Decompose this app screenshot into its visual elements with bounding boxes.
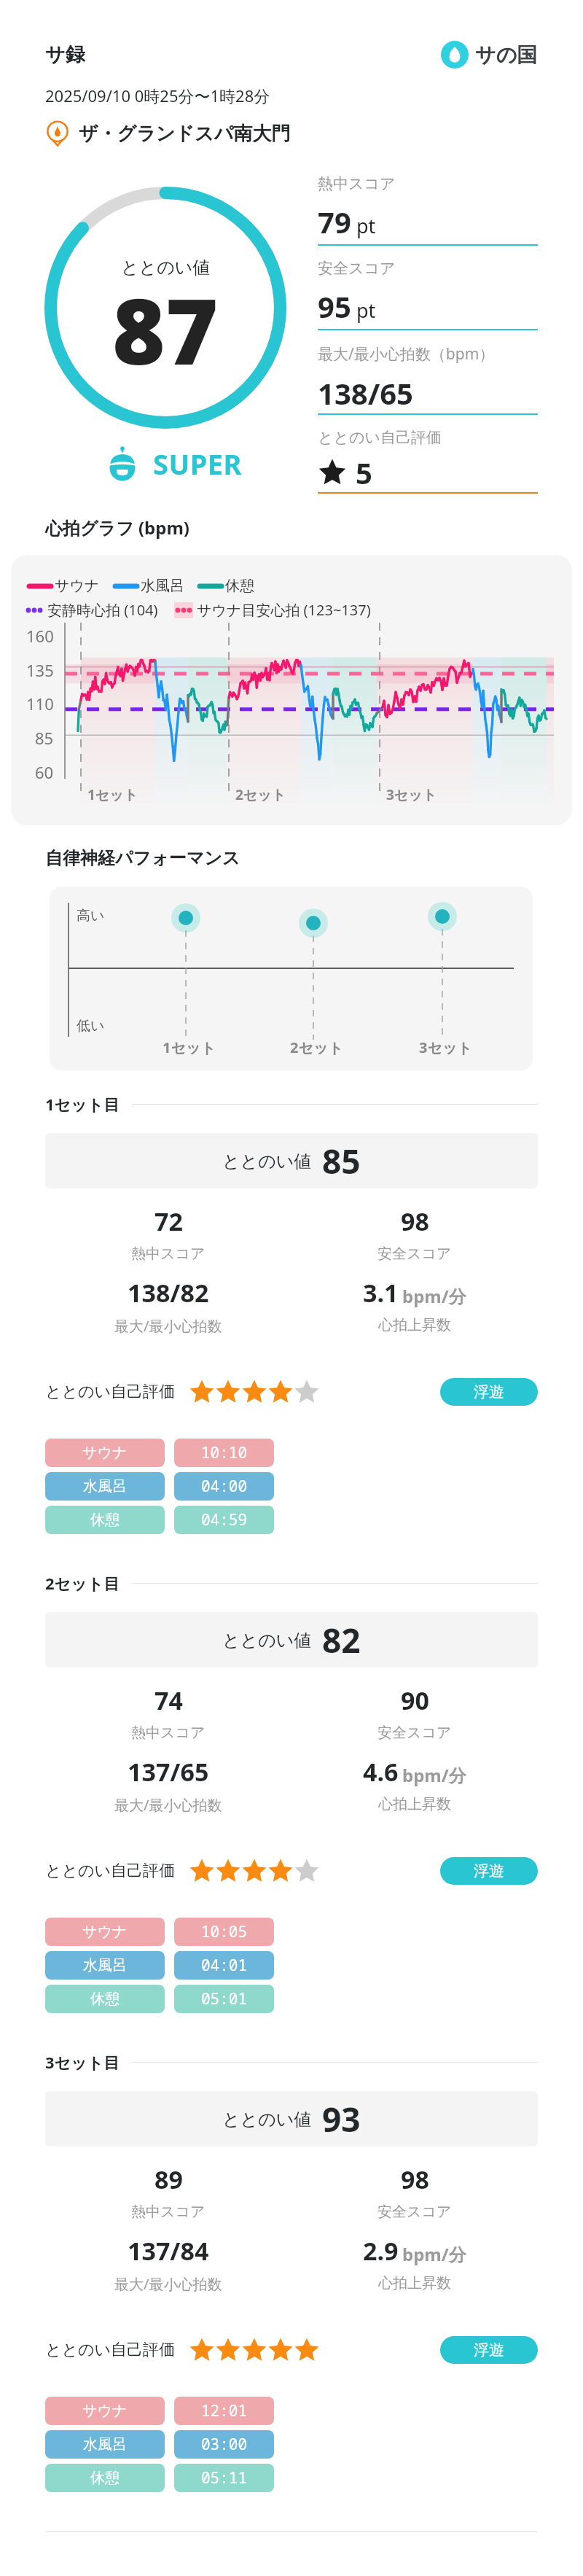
staticText: 90 — [401, 1684, 429, 1717]
staticText: 休憩 — [90, 2469, 120, 2487]
staticText: 79 — [318, 202, 351, 241]
staticText: サウナ — [82, 1923, 128, 1941]
staticText: ととのい自己評価 — [45, 1861, 176, 1881]
staticText: 心拍上昇数 — [378, 1795, 451, 1813]
staticText: サウナ — [55, 577, 100, 595]
staticText: サウナ目安心拍 (123~137) — [197, 600, 371, 620]
staticText: 110 — [26, 693, 54, 715]
staticText: 2セット — [235, 785, 286, 804]
staticText: 82 — [322, 1617, 361, 1663]
staticText: ととのい値 — [222, 2109, 312, 2131]
staticText: 安全スコア — [377, 1724, 452, 1742]
staticText: 12:01 — [201, 2400, 247, 2421]
staticText: 自律神経パフォーマンス — [45, 847, 240, 869]
staticText: 74 — [154, 1684, 183, 1717]
staticText: bpm/分 — [402, 1763, 466, 1787]
staticText: 138/65 — [318, 373, 413, 413]
staticText: 10:10 — [201, 1442, 247, 1463]
staticText: 安全スコア — [318, 259, 396, 278]
staticText: 安静時心拍 (104) — [47, 600, 158, 620]
staticText: 160 — [26, 625, 54, 647]
staticText: 03:00 — [201, 2434, 247, 2455]
staticText: 93 — [322, 2096, 361, 2142]
staticText: 3セット — [386, 785, 437, 804]
staticText: 水風呂 — [83, 1956, 127, 1974]
staticText: ザ・グランドスパ南大門 — [79, 122, 291, 146]
staticText: サウナ — [82, 2402, 128, 2420]
button[interactable]: 浮遊 — [440, 1378, 538, 1406]
staticText: 休憩 — [225, 577, 254, 595]
staticText: 最大/最小心拍数 — [114, 1316, 222, 1336]
staticText: ととのい値 — [222, 1630, 312, 1651]
staticText: bpm/分 — [402, 2242, 466, 2266]
staticText: 安全スコア — [377, 1245, 452, 1263]
button[interactable]: 評価 5 / 5 — [189, 2337, 320, 2363]
staticText: 熱中スコア — [131, 1245, 206, 1263]
staticText: ととのい自己評価 — [318, 428, 442, 447]
staticText: 水風呂 — [83, 2435, 127, 2454]
staticText: 98 — [401, 2163, 429, 2196]
staticText: pt — [356, 212, 376, 239]
staticText: 2セット目 — [45, 1572, 120, 1594]
button[interactable]: 浮遊 — [440, 2336, 538, 2364]
staticText: ととのい自己評価 — [45, 1382, 176, 1402]
staticText: 138/82 — [128, 1276, 209, 1310]
staticText: 04:01 — [201, 1955, 247, 1976]
staticText: ととのい値 — [222, 1151, 312, 1172]
staticText: 98 — [401, 1205, 429, 1238]
staticText: 60 — [35, 761, 54, 783]
staticText: 安全スコア — [377, 2203, 452, 2221]
staticText: 3セット — [419, 1038, 472, 1057]
other: Sauna location — [45, 121, 70, 146]
staticText: 135 — [26, 659, 54, 681]
staticText: 熱中スコア — [131, 2203, 206, 2221]
staticText: 05:01 — [201, 1988, 247, 2009]
staticText: 4.6 — [363, 1755, 399, 1789]
staticText: サウナ — [82, 1444, 128, 1462]
staticText: 最大/最小心拍数 — [114, 1795, 222, 1815]
staticText: 137/65 — [128, 1755, 209, 1789]
staticText: bpm/分 — [402, 1284, 466, 1308]
button[interactable]: 評価 4 / 5 — [189, 1858, 320, 1884]
button[interactable]: 浮遊 — [440, 1857, 538, 1885]
staticText: 2セット — [290, 1038, 343, 1057]
staticText: 水風呂 — [83, 1477, 127, 1495]
staticText: 3セット目 — [45, 2051, 120, 2073]
staticText: 04:59 — [201, 1509, 247, 1530]
staticText: 04:00 — [201, 1476, 247, 1497]
staticText: 浮遊 — [474, 1382, 504, 1401]
staticText: 05:11 — [201, 2467, 247, 2489]
staticText: 1セット — [87, 785, 138, 804]
staticText: 89 — [154, 2163, 183, 2196]
staticText: 熱中スコア — [318, 174, 396, 193]
staticText: 熱中スコア — [131, 1724, 206, 1742]
staticText: 10:05 — [201, 1921, 247, 1942]
staticText: サの国 — [475, 42, 538, 68]
staticText: 水風呂 — [141, 577, 184, 595]
staticText: ととのい自己評価 — [45, 2340, 176, 2360]
staticText: 低い — [77, 1017, 105, 1035]
staticText: 浮遊 — [474, 2340, 504, 2359]
staticText: 3.1 — [363, 1276, 399, 1310]
staticText: 2.9 — [363, 2234, 399, 2268]
staticText: 5 — [356, 453, 372, 492]
staticText: 95 — [318, 287, 351, 326]
staticText: 72 — [154, 1205, 183, 1238]
staticText: 85 — [35, 727, 54, 749]
staticText: SUPER — [153, 445, 242, 483]
staticText: 心拍上昇数 — [378, 2274, 451, 2292]
staticText: 最大/最小心拍数（bpm） — [318, 343, 495, 365]
staticText: 高い — [77, 907, 105, 925]
staticText: 2025/09/10 0時25分〜1時28分 — [45, 85, 270, 106]
staticText: 浮遊 — [474, 1861, 504, 1880]
staticText: ととのい値 — [121, 257, 211, 279]
staticText: 休憩 — [90, 1990, 120, 2008]
button[interactable]: 評価 4 / 5 — [189, 1379, 320, 1405]
staticText: 137/84 — [128, 2234, 209, 2268]
staticText: 心拍グラフ (bpm) — [45, 515, 189, 540]
staticText: 85 — [322, 1138, 361, 1184]
staticText: pt — [356, 297, 376, 324]
staticText: 1セット目 — [45, 1093, 120, 1115]
staticText: 休憩 — [90, 1511, 120, 1529]
button[interactable]: サの国 — [441, 41, 538, 69]
